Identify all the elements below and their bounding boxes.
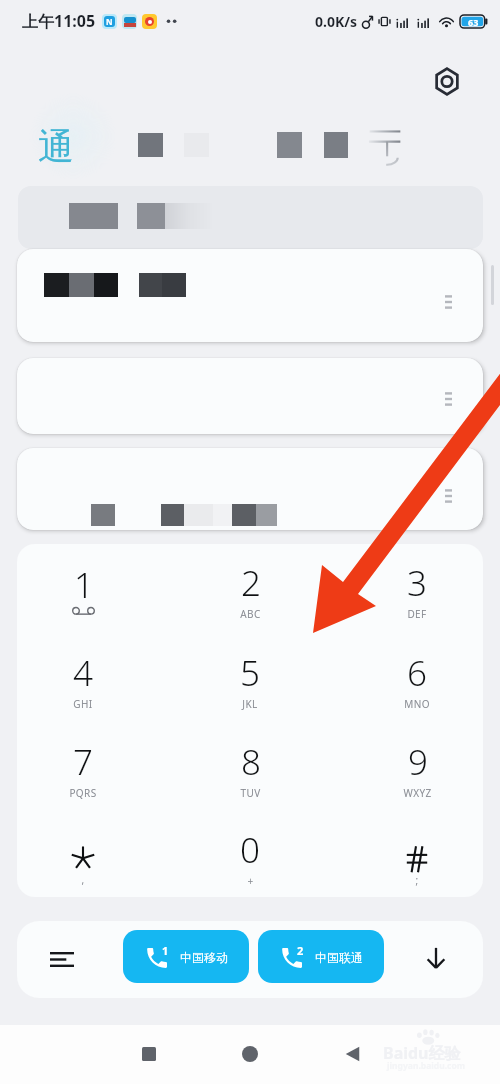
staticText: 4	[73, 649, 93, 697]
staticText: 0.0K/s	[315, 12, 358, 31]
staticText: 0	[240, 826, 260, 874]
button[interactable]: 2	[180, 548, 320, 632]
staticText: jingyan.baidu.com	[387, 1060, 466, 1072]
button[interactable]: 通	[28, 117, 84, 175]
button[interactable]: Menu	[38, 935, 86, 983]
button[interactable]: More options	[436, 484, 460, 508]
staticText: Baidu经验	[383, 1042, 461, 1064]
button[interactable]: 8	[180, 727, 320, 811]
staticText: 3	[407, 559, 427, 607]
staticText: 8	[241, 738, 261, 786]
staticText: TUV	[240, 786, 261, 800]
staticText: PQRS	[69, 786, 97, 800]
staticText: ;	[415, 873, 419, 887]
staticText: GHI	[73, 697, 93, 711]
staticText: +	[247, 874, 254, 888]
button[interactable]: ,	[13, 815, 153, 899]
button[interactable]: 2	[258, 930, 384, 983]
staticText: 2	[241, 559, 261, 607]
button[interactable]	[17, 358, 483, 434]
button[interactable]: 1	[123, 930, 249, 983]
staticText: ABC	[240, 607, 261, 621]
button[interactable]: 0	[180, 815, 320, 899]
staticText: N	[106, 16, 113, 27]
staticText: 1	[74, 561, 94, 609]
button[interactable]: 4	[13, 638, 153, 722]
staticText: 通	[38, 124, 74, 169]
button[interactable]: More options	[436, 290, 460, 314]
button[interactable]: Settings	[426, 61, 467, 102]
button[interactable]: 6	[347, 638, 487, 722]
button[interactable]: Hide keypad	[412, 934, 460, 982]
staticText: DEF	[407, 607, 427, 621]
button[interactable]	[17, 448, 483, 530]
button[interactable]: 1	[13, 548, 153, 632]
staticText: 63	[468, 16, 479, 28]
button[interactable]: 5	[180, 638, 320, 722]
staticText: 1	[162, 943, 169, 958]
button[interactable]: Back	[330, 1032, 374, 1076]
staticText: 5	[240, 649, 260, 697]
staticText: 上午11:05	[22, 10, 96, 32]
staticText: MNO	[404, 697, 430, 711]
button[interactable]	[17, 249, 483, 342]
button[interactable]: 3	[347, 548, 487, 632]
button[interactable]: 7	[13, 727, 153, 811]
staticText: 6	[407, 649, 427, 697]
staticText: WXYZ	[403, 786, 432, 800]
button[interactable]: More options	[436, 387, 460, 411]
button[interactable]: Recents	[127, 1032, 171, 1076]
staticText: 中国移动	[180, 950, 228, 965]
staticText: JKL	[242, 697, 258, 711]
button[interactable]	[18, 186, 483, 249]
button[interactable]: 9	[347, 727, 487, 811]
staticText: 7	[73, 738, 93, 786]
staticText: 中国联通	[315, 950, 363, 965]
button[interactable]: ;	[347, 815, 487, 899]
button[interactable]: Home	[228, 1032, 272, 1076]
staticText: 2	[297, 943, 304, 958]
staticText: ,	[81, 873, 85, 887]
staticText: 9	[408, 738, 428, 786]
